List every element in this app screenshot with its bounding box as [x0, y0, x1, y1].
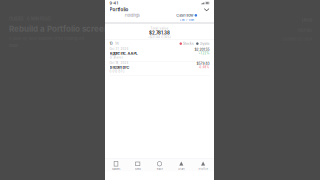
- staticText: Trade: [156, 168, 162, 171]
- staticText: 1D: [109, 42, 112, 45]
- staticText: 0.013 BTC: [109, 70, 124, 73]
- button[interactable]: Oct 18, 2024: [105, 61, 214, 75]
- button[interactable]: Trade: [149, 158, 170, 171]
- staticText: Bitcoin BTC: [109, 65, 129, 70]
- staticText: Last 7 days: [180, 18, 194, 21]
- staticText: Learn: [178, 168, 184, 171]
- staticText: 12 shares: [109, 56, 122, 59]
- staticText: Profile: [199, 168, 208, 171]
- staticText: News: [135, 168, 141, 171]
- staticText: Oct 21, 2024: [109, 47, 128, 51]
- button[interactable]: Oct 21, 2024: [105, 47, 214, 61]
- staticText: Total value: [150, 27, 168, 30]
- staticText: Rebuild a Portfolio screen in SwiftUI: [9, 24, 148, 34]
- staticText: Markets: [112, 168, 120, 171]
- button[interactable]: Learn: [170, 158, 192, 171]
- button[interactable]: Profile: [192, 158, 214, 171]
- staticText: Apple Inc. AAPL: [109, 51, 137, 56]
- button[interactable]: Markets: [105, 158, 127, 171]
- staticText: +$31.44 (1.14%): [148, 35, 171, 39]
- button[interactable]: Holdings: [105, 13, 159, 22]
- staticText: $579.83: [196, 61, 209, 65]
- staticText: 1W: [115, 42, 119, 45]
- button[interactable]: Choose portfolio: [204, 6, 209, 13]
- staticText: +1.22%: [198, 51, 209, 55]
- button[interactable]: Cash flow: [159, 13, 214, 22]
- staticText: Crypto: [199, 42, 209, 45]
- staticText: Portfolio: [109, 7, 128, 12]
- staticText: -0.48%: [198, 65, 209, 69]
- staticText: $2,781.38: [149, 30, 170, 35]
- staticText: Oct 18, 2024: [109, 61, 128, 65]
- button[interactable]: 1D: [109, 42, 112, 45]
- staticText: $2,201.55: [194, 47, 209, 51]
- staticText: 9:41: [109, 1, 118, 5]
- button[interactable]: News: [127, 158, 149, 171]
- staticText: Stocks: [183, 42, 194, 45]
- staticText: Holdings: [125, 13, 140, 18]
- staticText: Cash flow: [176, 13, 193, 18]
- button[interactable]: 1W: [112, 42, 119, 45]
